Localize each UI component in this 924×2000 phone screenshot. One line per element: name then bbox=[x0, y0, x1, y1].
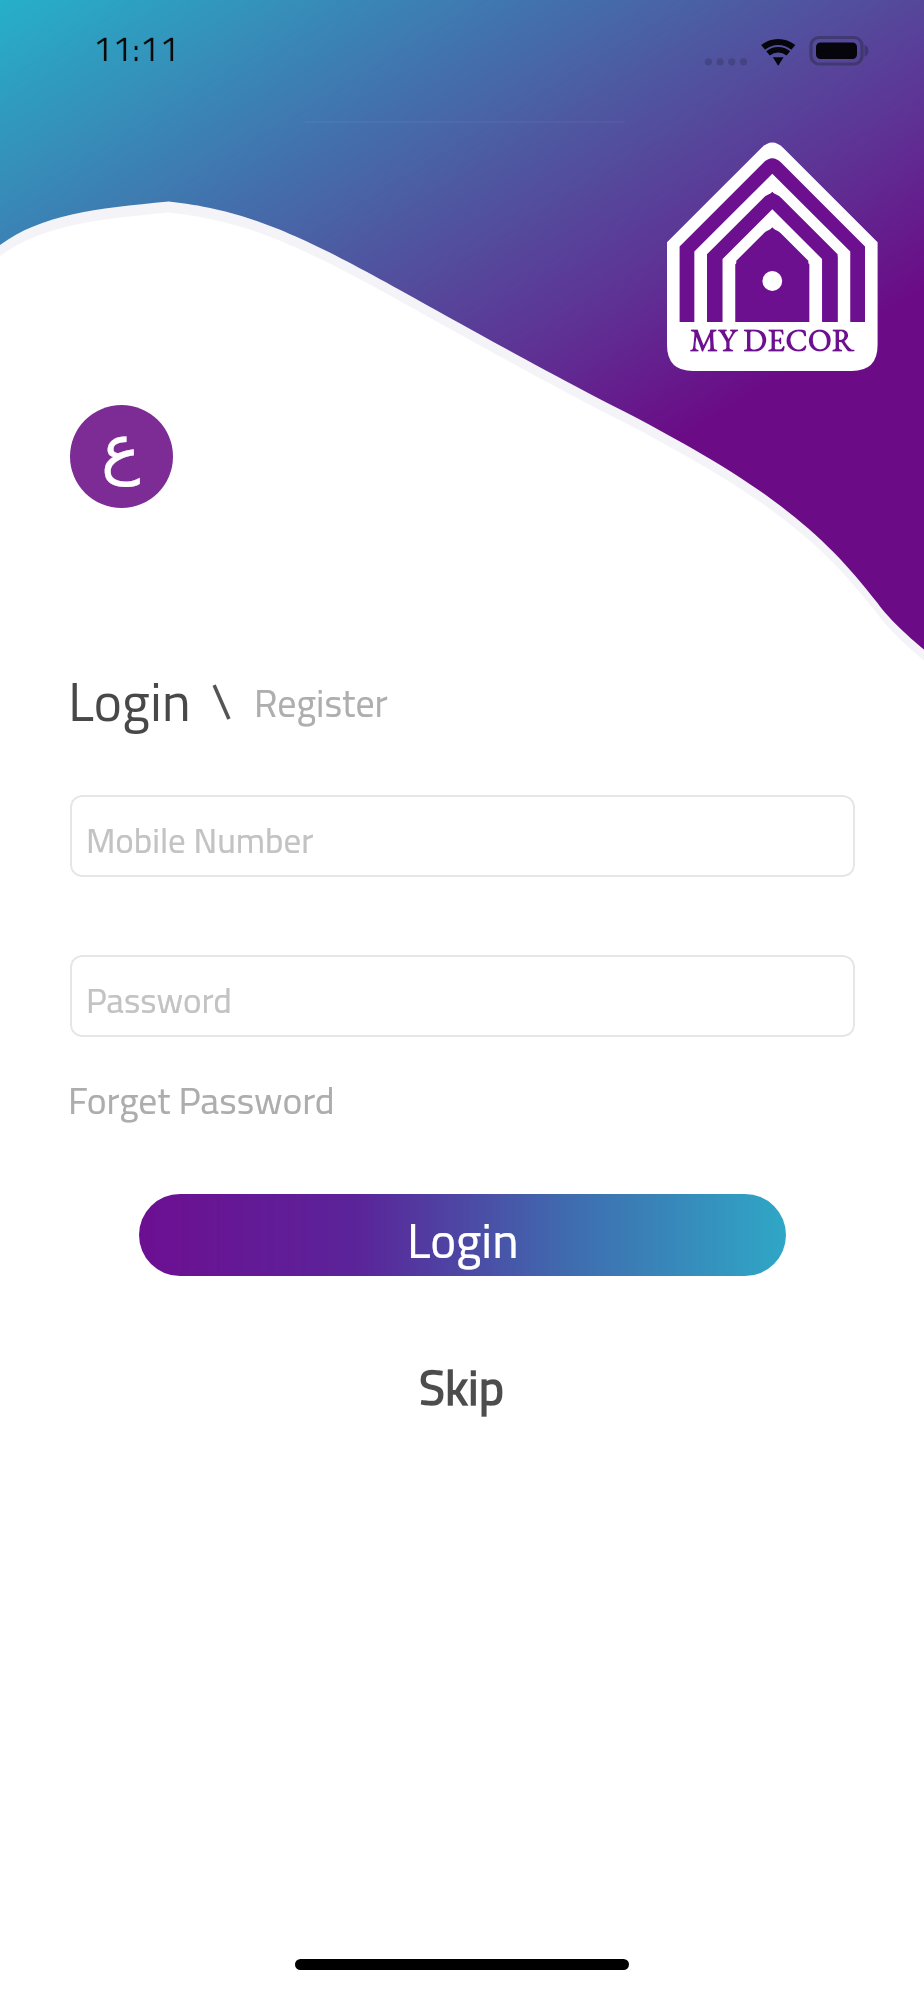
button[interactable]: Mobile Number bbox=[70, 795, 855, 877]
staticText: Login bbox=[407, 1194, 519, 1276]
staticText: Mobile Number bbox=[86, 807, 314, 873]
button[interactable]: Register bbox=[254, 667, 388, 738]
button[interactable]: Login bbox=[139, 1194, 786, 1276]
staticText: MY DECOR bbox=[690, 320, 855, 360]
button[interactable]: Login bbox=[68, 651, 191, 752]
button[interactable]: Forget Password bbox=[68, 1065, 335, 1135]
button[interactable]: My Decor logo bbox=[667, 136, 878, 371]
staticText: ع bbox=[101, 410, 141, 487]
staticText: 11:11 bbox=[93, 15, 180, 81]
button[interactable]: Switch language to Arabic bbox=[70, 405, 173, 508]
button[interactable]: Password bbox=[70, 955, 855, 1037]
staticText: Password bbox=[86, 967, 232, 1033]
staticText: \ bbox=[211, 656, 233, 746]
button[interactable]: Skip bbox=[399, 1336, 525, 1438]
